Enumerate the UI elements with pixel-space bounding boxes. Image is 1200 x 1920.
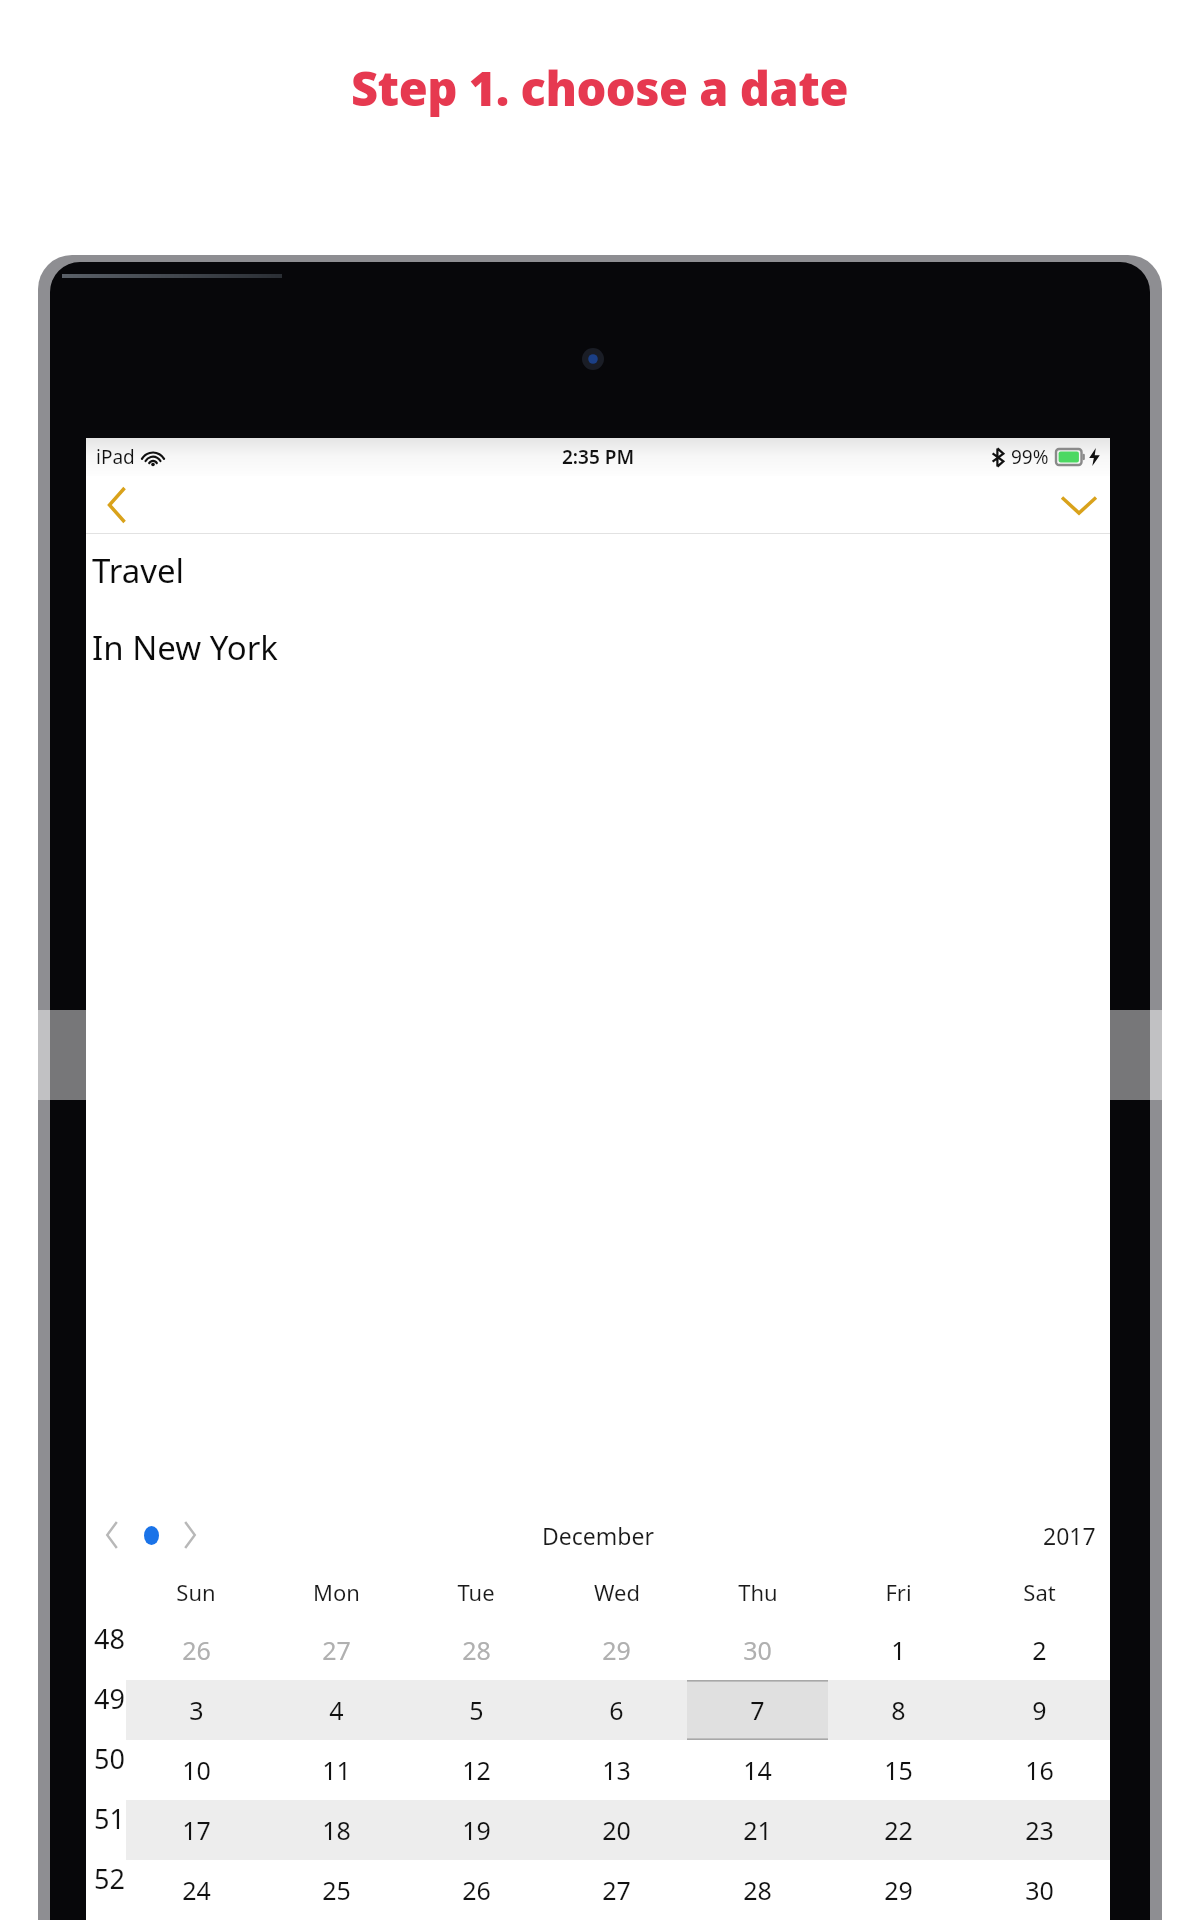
staticText: 21 bbox=[743, 1813, 772, 1847]
button[interactable]: 29 bbox=[828, 1860, 969, 1920]
staticText: Tue bbox=[457, 1577, 495, 1607]
staticText: 18 bbox=[322, 1813, 351, 1847]
button[interactable]: 27 bbox=[546, 1860, 687, 1920]
button[interactable]: 27 bbox=[266, 1620, 406, 1680]
staticText: 11 bbox=[322, 1753, 351, 1787]
button[interactable]: 19 bbox=[406, 1800, 546, 1860]
staticText: Mon bbox=[313, 1577, 360, 1607]
button[interactable]: 4 bbox=[266, 1680, 406, 1740]
button[interactable]: 17 bbox=[126, 1800, 266, 1860]
button[interactable]: Previous bbox=[92, 1515, 132, 1555]
staticText: 23 bbox=[1025, 1813, 1054, 1847]
staticText: 25 bbox=[322, 1873, 351, 1907]
staticText: Step 1. choose a date bbox=[351, 56, 849, 120]
staticText: 17 bbox=[182, 1813, 211, 1847]
staticText: Thu bbox=[738, 1577, 778, 1607]
staticText: 9 bbox=[1032, 1693, 1047, 1727]
staticText: 13 bbox=[602, 1753, 631, 1787]
button[interactable]: 2 bbox=[969, 1620, 1110, 1680]
staticText: 6 bbox=[609, 1693, 624, 1727]
staticText: 2:35 PM bbox=[562, 444, 635, 470]
button[interactable]: 26 bbox=[406, 1860, 546, 1920]
button[interactable]: 24 bbox=[126, 1860, 266, 1920]
staticText: 12 bbox=[462, 1753, 491, 1787]
button[interactable]: Expand bbox=[1048, 476, 1110, 534]
staticText: 14 bbox=[743, 1753, 772, 1787]
button[interactable]: 21 bbox=[687, 1800, 828, 1860]
staticText: 24 bbox=[182, 1873, 211, 1907]
staticText: 10 bbox=[182, 1753, 211, 1787]
staticText: In New York bbox=[92, 625, 278, 670]
button[interactable]: 26 bbox=[126, 1620, 266, 1680]
staticText: Wed bbox=[594, 1577, 640, 1607]
button[interactable]: 9 bbox=[969, 1680, 1110, 1740]
button[interactable]: 20 bbox=[546, 1800, 687, 1860]
staticText: 3 bbox=[189, 1693, 204, 1727]
button[interactable]: 3 bbox=[126, 1680, 266, 1740]
staticText: 30 bbox=[743, 1633, 772, 1667]
staticText: 28 bbox=[462, 1633, 491, 1667]
staticText: 22 bbox=[884, 1813, 913, 1847]
staticText: 2 bbox=[1032, 1633, 1047, 1667]
staticText: 20 bbox=[602, 1813, 631, 1847]
staticText: 30 bbox=[1025, 1873, 1054, 1907]
staticText: 28 bbox=[743, 1873, 772, 1907]
staticText: 27 bbox=[322, 1633, 351, 1667]
staticText: Sat bbox=[1023, 1577, 1056, 1607]
staticText: 51 bbox=[94, 1800, 125, 1837]
staticText: 7 bbox=[750, 1693, 765, 1727]
button[interactable]: 25 bbox=[266, 1860, 406, 1920]
staticText: 50 bbox=[94, 1740, 125, 1777]
button[interactable]: Back bbox=[86, 476, 148, 534]
staticText: 49 bbox=[94, 1680, 125, 1717]
staticText: 26 bbox=[182, 1633, 211, 1667]
button[interactable]: Next bbox=[170, 1515, 210, 1555]
button[interactable]: 18 bbox=[266, 1800, 406, 1860]
button[interactable]: 10 bbox=[126, 1740, 266, 1800]
staticText: 52 bbox=[94, 1860, 125, 1897]
staticText: 15 bbox=[884, 1753, 913, 1787]
staticText: 1 bbox=[891, 1633, 906, 1667]
button[interactable]: Today bbox=[132, 1516, 170, 1554]
button[interactable]: 8 bbox=[828, 1680, 969, 1740]
button[interactable]: 29 bbox=[546, 1620, 687, 1680]
button[interactable]: 23 bbox=[969, 1800, 1110, 1860]
staticText: 4 bbox=[329, 1693, 344, 1727]
button[interactable]: 6 bbox=[546, 1680, 687, 1740]
button[interactable]: 22 bbox=[828, 1800, 969, 1860]
button[interactable]: 5 bbox=[406, 1680, 546, 1740]
staticText: 29 bbox=[884, 1873, 913, 1907]
button[interactable]: 7 bbox=[687, 1680, 828, 1740]
staticText: Travel bbox=[92, 548, 185, 593]
staticText: 16 bbox=[1025, 1753, 1054, 1787]
button[interactable]: 12 bbox=[406, 1740, 546, 1800]
staticText: 2017 bbox=[1043, 1520, 1096, 1551]
button[interactable]: 28 bbox=[406, 1620, 546, 1680]
staticText: 99% bbox=[1011, 444, 1049, 470]
button[interactable]: 13 bbox=[546, 1740, 687, 1800]
button[interactable]: 11 bbox=[266, 1740, 406, 1800]
staticText: 26 bbox=[462, 1873, 491, 1907]
staticText: 29 bbox=[602, 1633, 631, 1667]
button[interactable]: 30 bbox=[969, 1860, 1110, 1920]
staticText: 5 bbox=[469, 1693, 484, 1727]
button[interactable]: 30 bbox=[687, 1620, 828, 1680]
staticText: Fri bbox=[885, 1577, 912, 1607]
button[interactable]: 16 bbox=[969, 1740, 1110, 1800]
button[interactable]: 1 bbox=[828, 1620, 969, 1680]
button[interactable]: 14 bbox=[687, 1740, 828, 1800]
staticText: iPad bbox=[96, 444, 135, 470]
staticText: 48 bbox=[94, 1620, 125, 1657]
button[interactable]: 15 bbox=[828, 1740, 969, 1800]
staticText: 19 bbox=[462, 1813, 491, 1847]
staticText: 27 bbox=[602, 1873, 631, 1907]
staticText: Sun bbox=[176, 1577, 216, 1607]
button[interactable]: 28 bbox=[687, 1860, 828, 1920]
staticText: December bbox=[542, 1520, 654, 1551]
staticText: 8 bbox=[891, 1693, 906, 1727]
